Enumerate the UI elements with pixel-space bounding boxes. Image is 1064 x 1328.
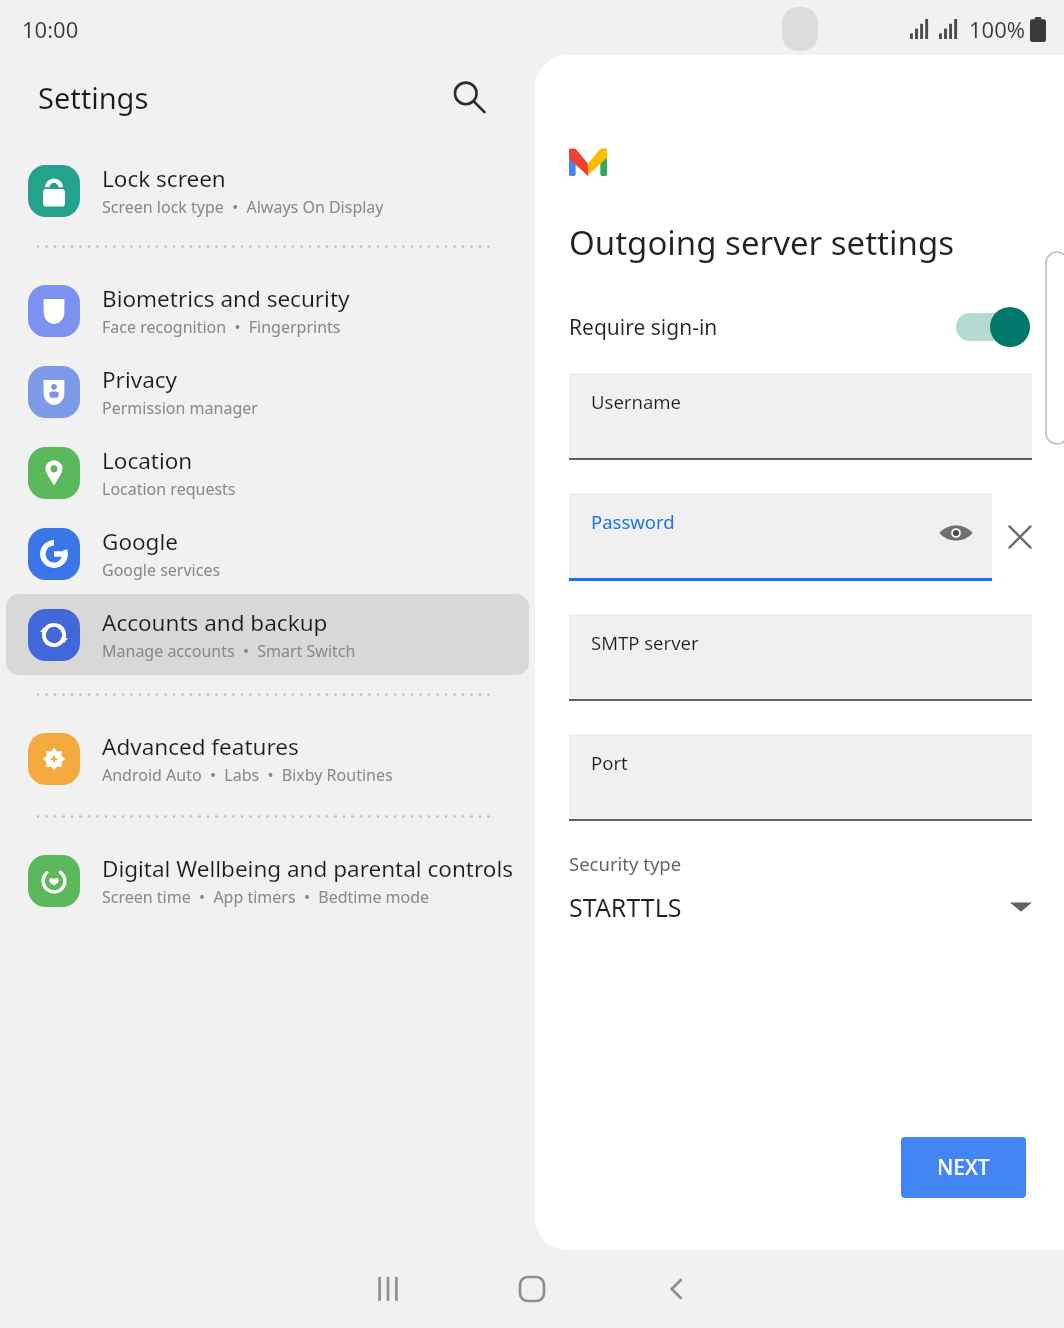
staticText: Settings [38,78,149,117]
button[interactable]: Privacy [6,351,529,432]
staticText: STARTTLS [569,890,1010,924]
button[interactable]: Biometrics and security [6,270,529,351]
staticText: Port [591,750,628,775]
staticText: Location requests [102,478,236,500]
staticText: Google services [102,559,221,581]
staticText: Biometrics and security [102,283,350,314]
button[interactable]: Clear [998,515,1042,559]
button[interactable]: STARTTLS [569,890,1032,924]
button[interactable]: Require sign-in [569,307,1030,347]
staticText: Require sign-in [569,313,956,342]
staticText: Digital Wellbeing and parental controls [102,853,513,884]
staticText: Permission manager [102,397,258,419]
staticText: 100% [969,14,1026,44]
button[interactable]: Home [484,1254,580,1324]
staticText: Screen time • App timers • Bedtime mode [102,886,430,908]
button[interactable]: Location [6,432,529,513]
staticText: Lock screen [102,163,226,194]
staticText: Location [102,445,193,476]
button[interactable]: Digital Wellbeing and parental controls [6,840,529,921]
staticText: Outgoing server settings [569,220,955,265]
staticText: Privacy [102,364,178,395]
button[interactable]: Search [443,71,495,123]
staticText: SMTP server [591,630,699,655]
button[interactable]: Accounts and backup [6,594,529,675]
staticText: Security type [569,851,682,876]
staticText: Face recognition • Fingerprints [102,316,341,338]
button[interactable]: Password [569,493,992,578]
staticText: Password [591,509,675,534]
button[interactable]: SMTP server [569,614,1032,699]
button[interactable]: Advanced features [6,718,529,799]
staticText: NEXT [937,1153,990,1182]
button[interactable]: Username [569,373,1032,458]
button[interactable]: Lock screen [6,150,529,231]
staticText: Advanced features [102,731,299,762]
staticText: Manage accounts • Smart Switch [102,640,356,662]
staticText: Screen lock type • Always On Display [102,196,384,218]
button[interactable]: Google [6,513,529,594]
staticText: 10:00 [22,14,79,44]
staticText: Google [102,526,178,557]
staticText: Accounts and backup [102,607,328,638]
staticText: Android Auto • Labs • Bixby Routines [102,764,393,786]
button[interactable]: Back [628,1254,724,1324]
staticText: Username [591,389,682,414]
button[interactable]: Show password [938,515,974,551]
button[interactable]: Port [569,734,1032,819]
button[interactable]: Recents [340,1254,436,1324]
button[interactable]: NEXT [901,1137,1026,1198]
